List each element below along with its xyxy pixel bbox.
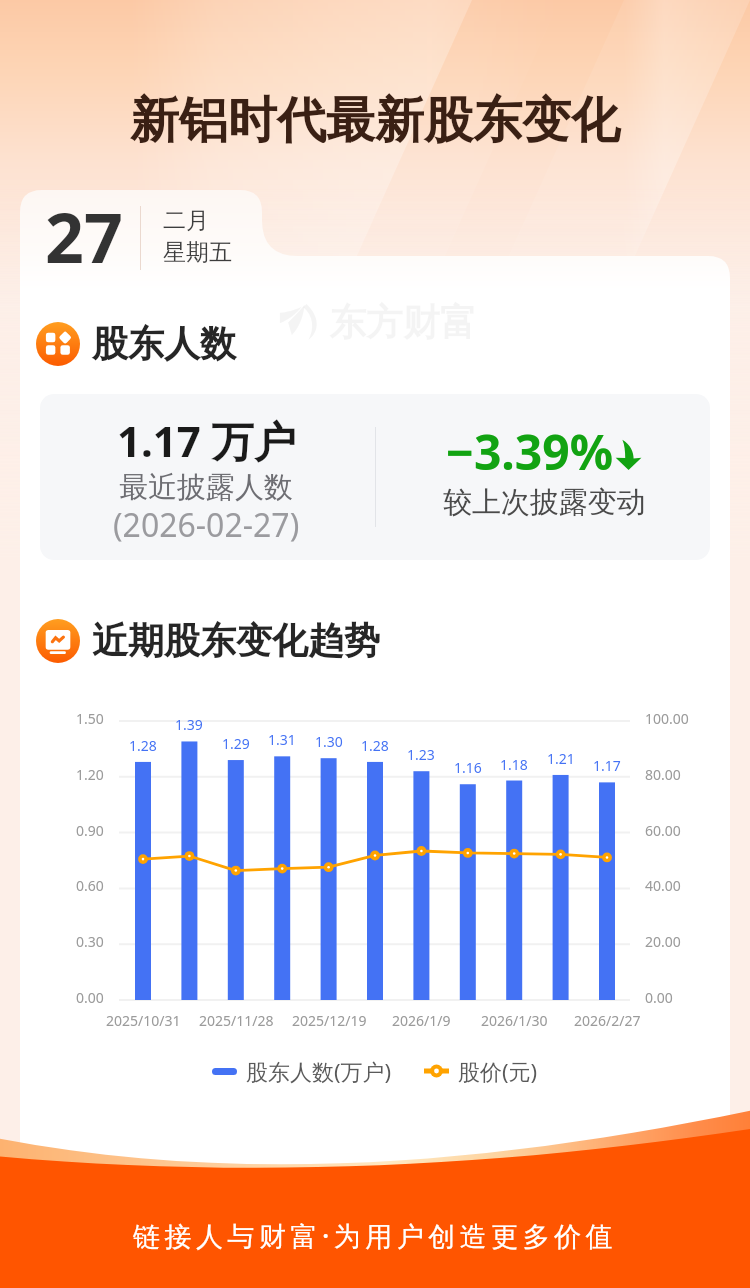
- staticText: 最近披露人数: [119, 469, 293, 506]
- staticText: 1.18: [500, 755, 528, 774]
- staticText: 股东人数: [92, 321, 236, 366]
- staticText: 2026/1/9: [392, 1011, 451, 1030]
- staticText: 2026/1/30: [481, 1011, 548, 1030]
- staticText: 0.00: [645, 988, 673, 1007]
- staticText: 1.31: [268, 730, 296, 749]
- staticText: 0.90: [76, 821, 104, 840]
- staticText: 20.00: [645, 932, 681, 951]
- staticText: 100.00: [645, 709, 689, 728]
- staticText: 2025/12/19: [292, 1011, 367, 1030]
- staticText: −3.39%: [446, 419, 614, 484]
- staticText: 股东人数(万户): [246, 1056, 392, 1086]
- staticText: 1.21: [547, 749, 575, 768]
- button[interactable]: 股东人数: [36, 321, 236, 366]
- staticText: 1.50: [76, 709, 104, 728]
- button[interactable]: 近期股东变化趋势: [36, 618, 380, 663]
- staticText: 40.00: [645, 876, 681, 895]
- staticText: 较上次披露变动: [443, 484, 646, 521]
- staticText: 1.17: [593, 756, 621, 775]
- staticText: 1.30: [315, 732, 343, 751]
- staticText: 1.28: [361, 736, 389, 755]
- staticText: 80.00: [645, 765, 681, 784]
- staticText: 0.60: [76, 876, 104, 895]
- staticText: 1.20: [76, 765, 104, 784]
- staticText: 2025/11/28: [199, 1011, 274, 1030]
- staticText: 0.30: [76, 932, 104, 951]
- staticText: 1.16: [454, 758, 482, 777]
- staticText: 链接人与财富·为用户创造更多价值: [133, 1217, 618, 1254]
- staticText: 1.17 万户: [117, 412, 296, 469]
- staticText: 27: [45, 190, 123, 283]
- staticText: 1.28: [129, 736, 157, 755]
- staticText: 1.29: [222, 734, 250, 753]
- staticText: 1.23: [407, 745, 435, 764]
- staticText: 2026/2/27: [574, 1011, 641, 1030]
- staticText: 0.00: [76, 988, 104, 1007]
- staticText: 东方财富: [329, 299, 477, 346]
- staticText: 1.39: [175, 715, 203, 734]
- staticText: (2026-02-27): [113, 503, 300, 547]
- staticText: 近期股东变化趋势: [92, 618, 380, 663]
- staticText: 60.00: [645, 821, 681, 840]
- staticText: 股价(元): [458, 1056, 538, 1086]
- staticText: 二月: [163, 206, 209, 235]
- staticText: 2025/10/31: [106, 1011, 181, 1030]
- staticText: 新铝时代最新股东变化: [130, 90, 620, 152]
- staticText: 星期五: [163, 238, 232, 267]
